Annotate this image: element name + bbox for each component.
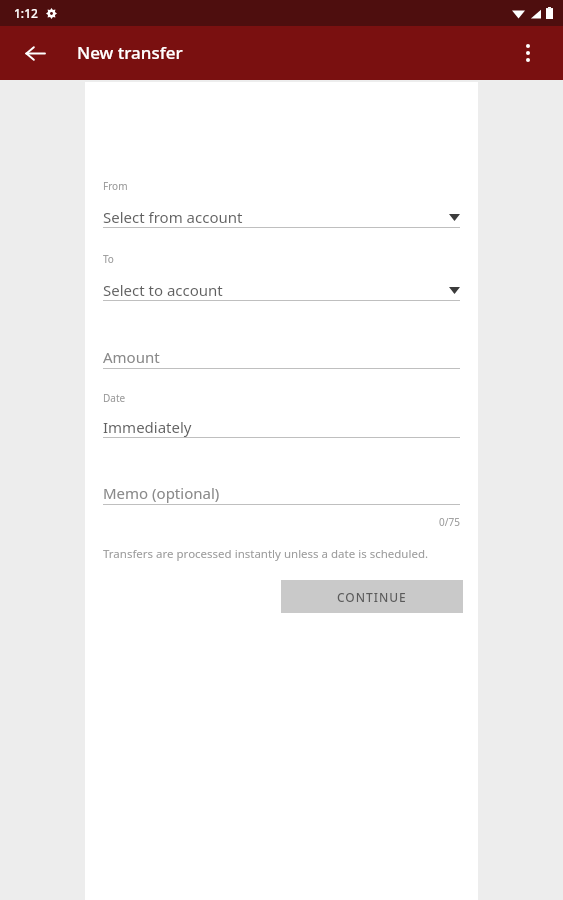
button[interactable]: CONTINUE — [281, 580, 463, 613]
staticText: 1:12 — [14, 5, 38, 21]
button[interactable]: Select from account — [103, 204, 460, 230]
staticText: Select to account — [103, 280, 223, 300]
staticText: Immediately — [103, 417, 192, 437]
button[interactable]: Back — [11, 29, 59, 77]
button[interactable]: More options — [504, 29, 552, 77]
button[interactable]: Amount — [103, 344, 460, 370]
button[interactable]: Immediately — [103, 414, 460, 440]
staticText: 0/75 — [439, 515, 460, 529]
staticText: Memo (optional) — [103, 483, 220, 503]
staticText: Date — [103, 391, 126, 405]
button[interactable]: Select to account — [103, 277, 460, 303]
staticText: Transfers are processed instantly unless… — [103, 546, 429, 562]
staticText: To — [103, 252, 114, 266]
button[interactable]: Memo (optional) — [103, 480, 460, 506]
staticText: From — [103, 179, 128, 193]
staticText: Select from account — [103, 207, 243, 227]
staticText: CONTINUE — [337, 589, 407, 605]
staticText: Amount — [103, 347, 160, 367]
staticText: New transfer — [77, 41, 183, 64]
